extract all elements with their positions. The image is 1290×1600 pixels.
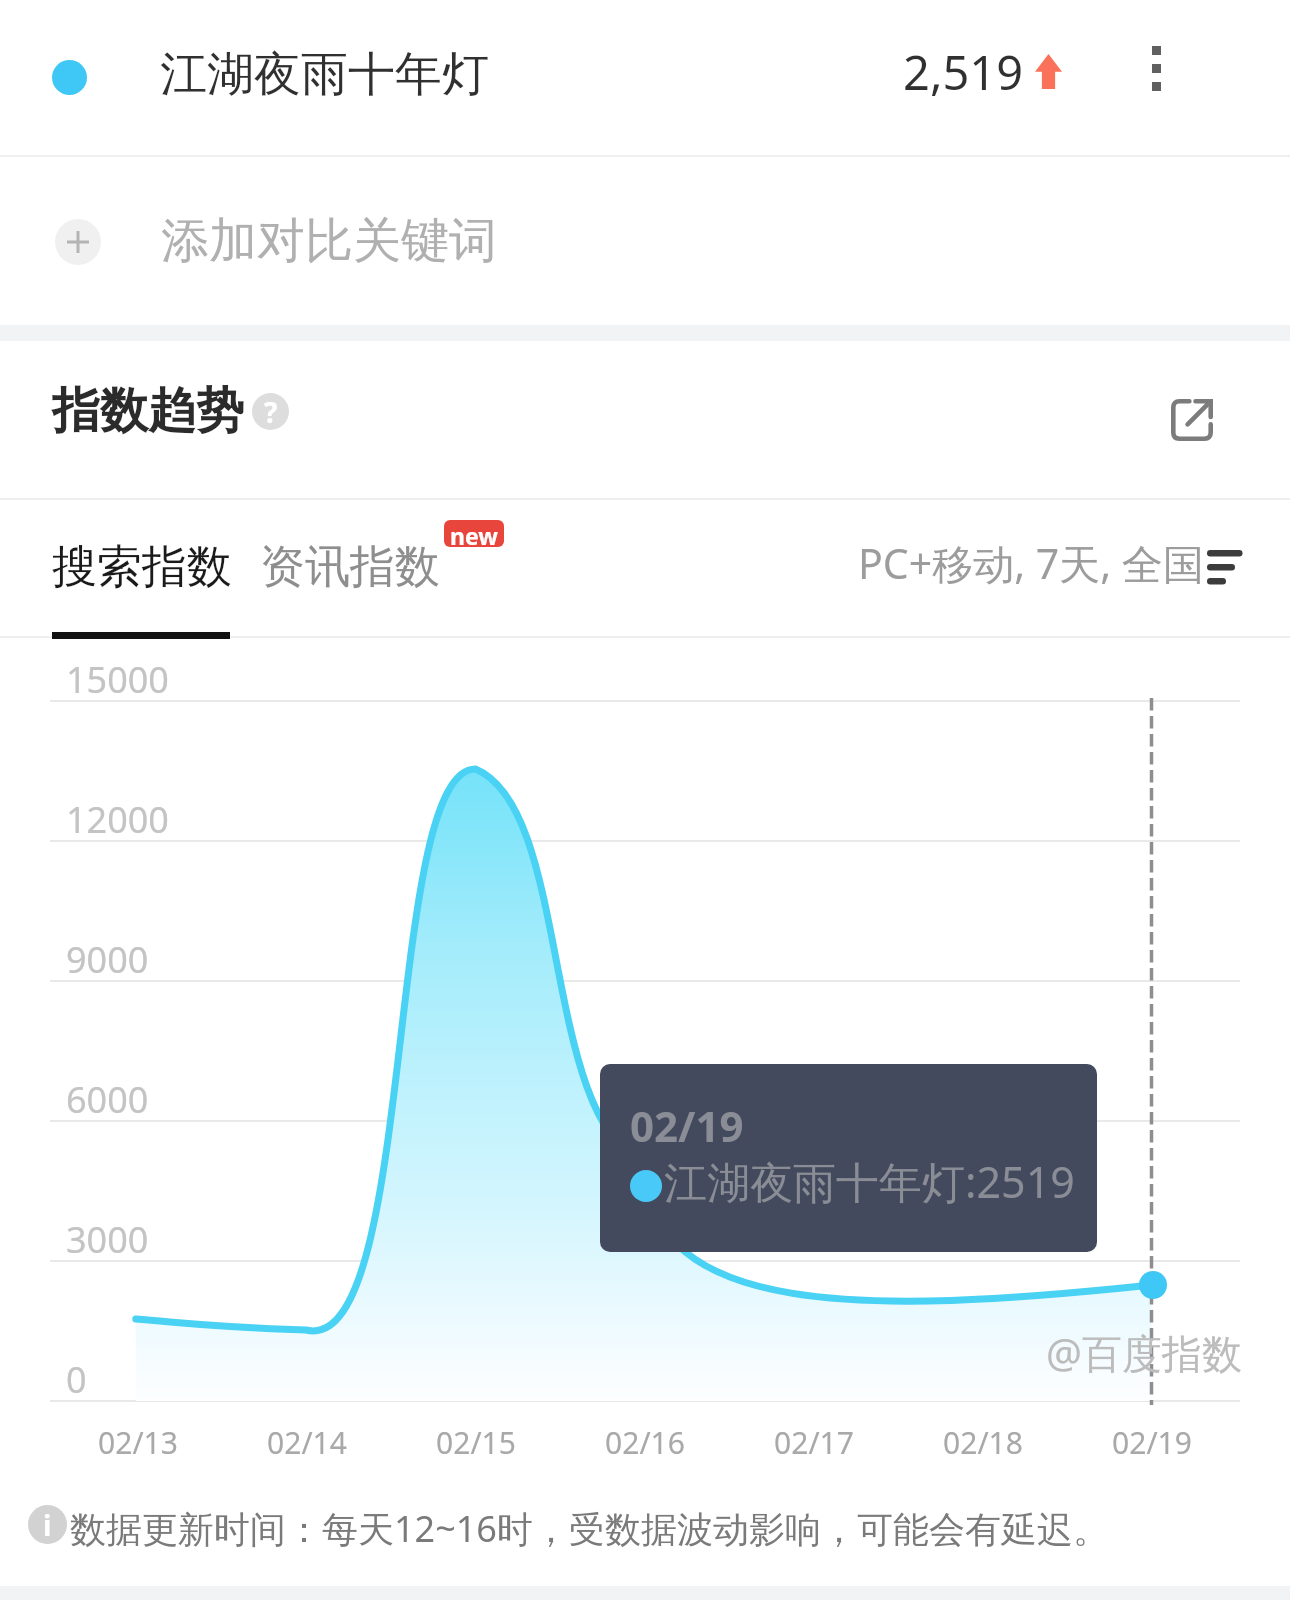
staticText: 02/13 — [98, 1422, 178, 1463]
staticText: 3000 — [66, 1215, 149, 1264]
button[interactable]: 资讯指数 — [260, 539, 440, 596]
staticText: 江湖夜雨十年灯:2519 — [664, 1152, 1075, 1211]
button[interactable]: 添加对比关键词 — [0, 157, 1290, 325]
staticText: 02/19 — [630, 1097, 744, 1154]
staticText: new — [450, 520, 498, 547]
staticText: 02/18 — [943, 1422, 1023, 1463]
staticText: @百度指数 — [1046, 1325, 1242, 1380]
button[interactable]: 搜索指数 — [52, 539, 232, 596]
staticText: 江湖夜雨十年灯 — [160, 45, 489, 104]
staticText: 添加对比关键词 — [161, 211, 497, 271]
staticText: PC+移动, 7天, 全国 — [858, 535, 1204, 591]
staticText: 6000 — [66, 1075, 149, 1124]
staticText: 9000 — [66, 935, 149, 984]
staticText: ? — [264, 393, 278, 430]
staticText: 15000 — [66, 655, 169, 704]
staticText: 12000 — [66, 795, 169, 844]
staticText: 02/19 — [1112, 1422, 1192, 1463]
button[interactable]: Open in new window — [1144, 372, 1240, 468]
button[interactable]: More options — [1111, 13, 1201, 123]
button[interactable]: PC+移动, 7天, 全国 — [858, 535, 1244, 591]
button[interactable]: 江湖夜雨十年灯 — [0, 0, 1290, 155]
staticText: 0 — [66, 1355, 87, 1404]
staticText: 数据更新时间：每天12~16时，受数据波动影响，可能会有延迟。 — [70, 1504, 1109, 1553]
staticText: i — [43, 1506, 52, 1544]
button[interactable]: Help — [252, 393, 289, 430]
staticText: 指数趋势 — [52, 381, 244, 441]
staticText: 02/16 — [605, 1422, 685, 1463]
staticText: 2,519 — [903, 40, 1024, 104]
staticText: 02/17 — [774, 1422, 854, 1463]
staticText: 02/14 — [267, 1422, 347, 1463]
staticText: 02/15 — [436, 1422, 516, 1463]
